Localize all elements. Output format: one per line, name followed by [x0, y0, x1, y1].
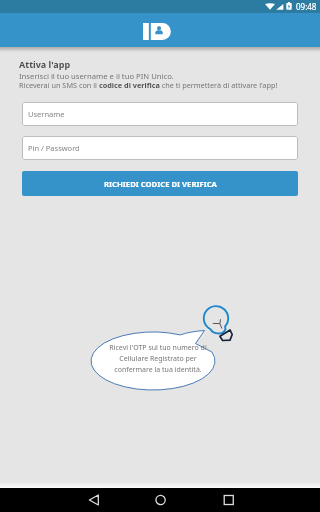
button[interactable]: Back: [0, 488, 106, 512]
button[interactable]: Pin / Password: [22, 136, 298, 160]
staticText: Riceverai un SMS con il codice di verifi…: [19, 80, 278, 90]
staticText: Pin / Password: [28, 143, 80, 153]
other: ID logo: [143, 23, 172, 40]
button[interactable]: Username: [22, 102, 298, 126]
staticText: 09:48: [296, 1, 317, 12]
staticText: Username: [28, 109, 65, 119]
button[interactable]: RICHIEDI CODICE DI VERIFICA: [22, 171, 298, 196]
staticText: Inserisci il tuo username e il tuo PIN U…: [19, 71, 174, 81]
staticText: Attiva l'app: [19, 58, 71, 70]
button[interactable]: Recent apps: [213, 488, 320, 512]
button[interactable]: Home: [106, 488, 213, 512]
staticText: Ricevi l'OTP sul tuo numero di Cellulare…: [109, 343, 207, 375]
staticText: RICHIEDI CODICE DI VERIFICA: [104, 179, 217, 189]
